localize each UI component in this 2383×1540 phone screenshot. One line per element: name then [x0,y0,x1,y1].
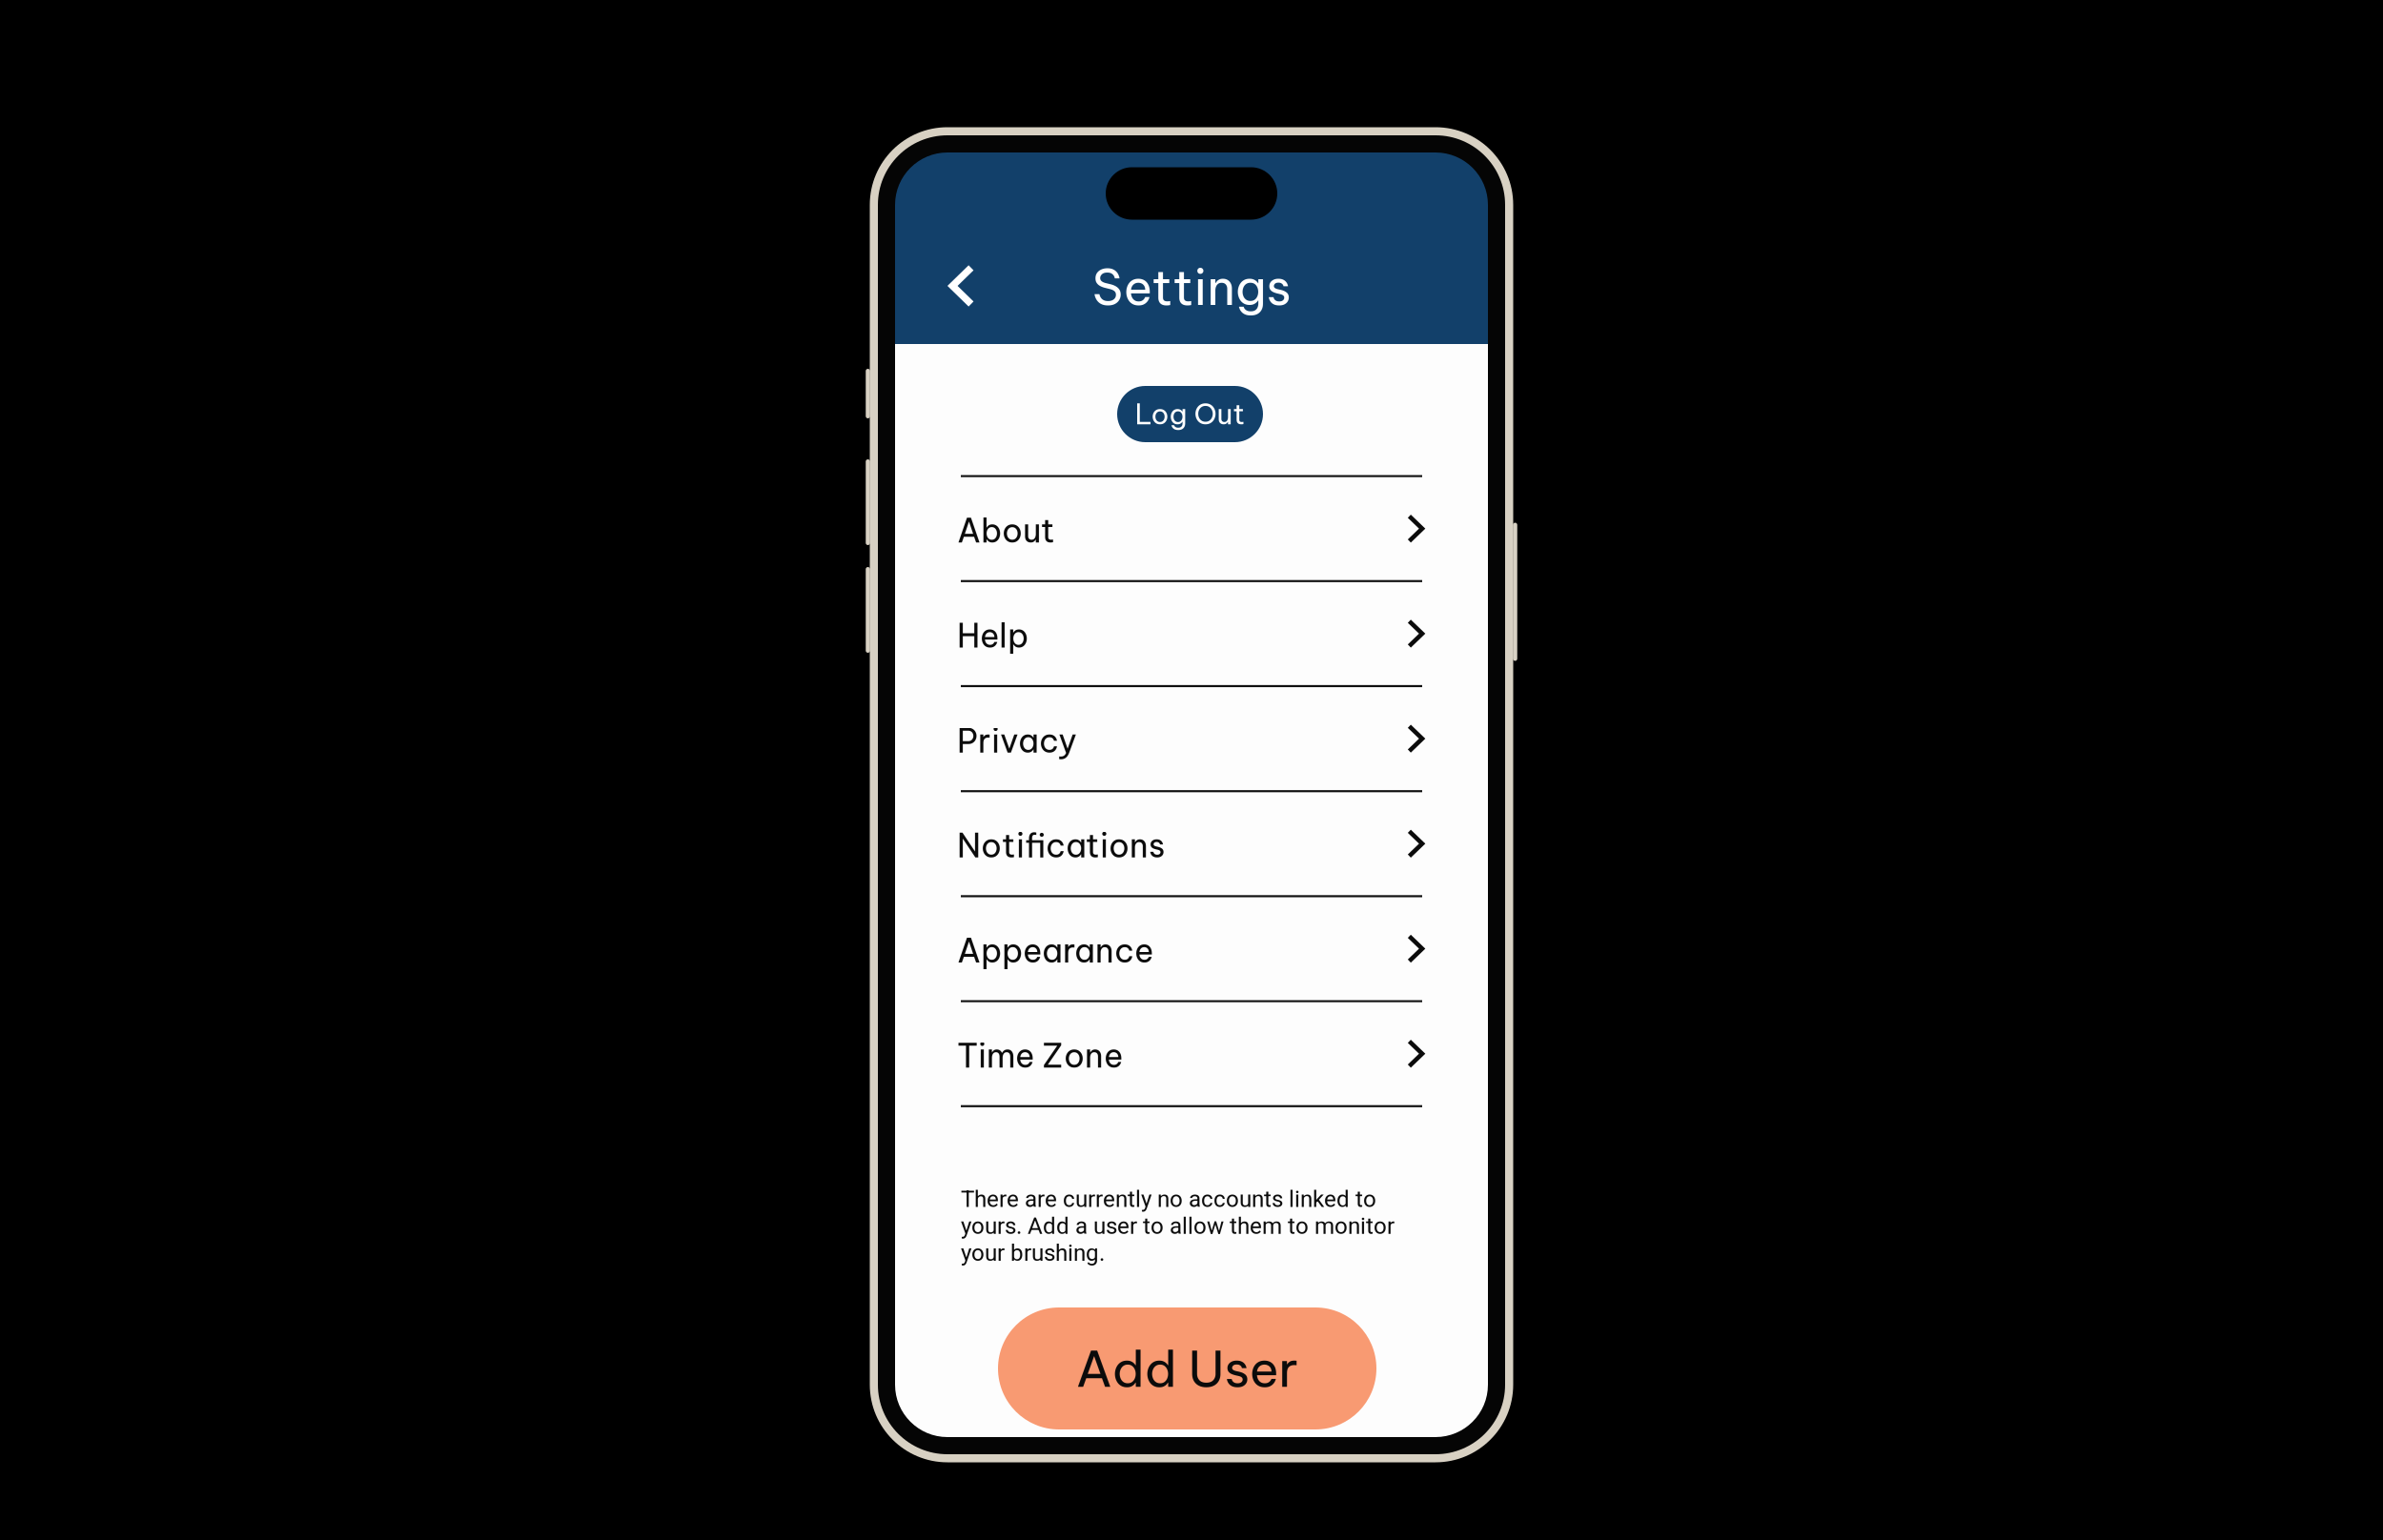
button[interactable]: Appearance [961,897,1422,1000]
staticText: There are currently no accounts linked t… [961,1185,1395,1266]
staticText: Privacy [957,720,1077,761]
button[interactable]: Back [925,249,999,323]
staticText: Add User [1076,1337,1299,1400]
button[interactable]: Log Out [1117,386,1263,442]
button[interactable]: About [961,477,1422,580]
staticText: Log Out [1135,396,1245,432]
button[interactable]: Add User [998,1307,1376,1429]
staticText: Time Zone [957,1035,1123,1076]
staticText: About [957,510,1055,551]
staticText: Appearance [957,930,1153,971]
button[interactable]: Privacy [961,687,1422,790]
button[interactable]: Help [961,582,1422,685]
staticText: Settings [1092,256,1291,318]
button[interactable]: Notifications [961,792,1422,895]
button[interactable]: Time Zone [961,1002,1422,1105]
staticText: Notifications [957,825,1165,866]
staticText: Help [957,615,1029,656]
